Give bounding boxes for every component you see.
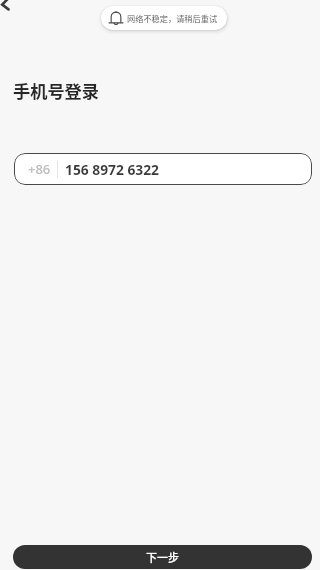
button[interactable]: +86 <box>14 153 312 185</box>
button[interactable]: Back <box>0 0 24 12</box>
button[interactable]: 网络不稳定，请稍后重试 <box>101 6 227 30</box>
staticText: 网络不稳定，请稍后重试 <box>127 12 218 24</box>
staticText: 156 8972 6322 <box>65 160 159 179</box>
staticText: +86 <box>28 160 51 178</box>
button[interactable]: 下一步 <box>13 545 312 569</box>
staticText: 手机号登录 <box>13 78 99 103</box>
staticText: 下一步 <box>146 549 179 565</box>
